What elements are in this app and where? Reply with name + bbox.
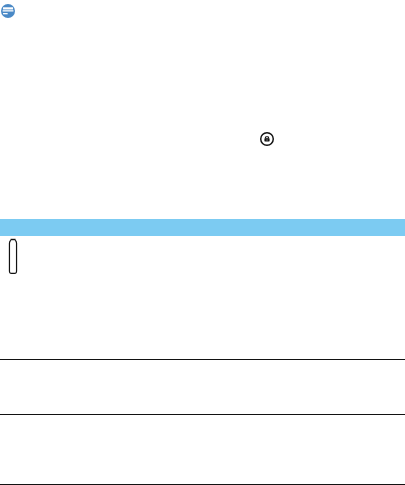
button[interactable]: Open navigation menu [1,4,15,18]
button[interactable]: Locked content [260,132,274,146]
button[interactable]: Water bottle [8,238,18,274]
